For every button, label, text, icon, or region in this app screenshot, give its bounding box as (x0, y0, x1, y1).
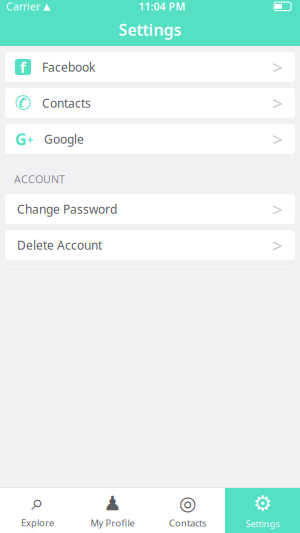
button[interactable]: ✆ (5, 88, 295, 118)
staticText: > (272, 91, 283, 115)
staticText: 11:04 PM (138, 0, 185, 13)
staticText: > (272, 233, 283, 258)
staticText: Delete Account (17, 237, 102, 253)
staticText: ⌕ (31, 492, 44, 514)
button[interactable]: ⚙ (225, 488, 300, 533)
staticText: Carrier (6, 0, 40, 13)
button[interactable]: Delete Account (5, 230, 295, 260)
button[interactable]: ♟ (75, 488, 150, 533)
button[interactable]: ◎ (150, 488, 225, 533)
staticText: > (272, 55, 283, 79)
staticText: > (272, 197, 283, 222)
staticText: Explore (21, 516, 54, 529)
staticText: Change Password (17, 201, 117, 217)
staticText: ACCOUNT (14, 172, 65, 186)
staticText: Facebook (42, 59, 95, 75)
button[interactable]: G (5, 124, 295, 154)
staticText: + (27, 132, 33, 146)
staticText: Settings (118, 19, 181, 40)
staticText: ⚙ (253, 491, 272, 515)
staticText: Contacts (42, 95, 91, 111)
staticText: My Profile (90, 517, 134, 529)
staticText: Google (44, 131, 84, 147)
button[interactable]: f (5, 52, 295, 82)
staticText: ♟ (103, 492, 121, 515)
staticText: ✆ (14, 92, 31, 114)
staticText: G (15, 128, 27, 150)
button[interactable]: Change Password (5, 194, 295, 224)
button[interactable]: ⌕ (0, 488, 75, 533)
staticText: f (20, 57, 26, 77)
staticText: Contacts (169, 517, 206, 529)
staticText: Settings (245, 517, 279, 530)
staticText: > (272, 127, 283, 151)
staticText: ◎ (179, 492, 196, 515)
staticText: ▲ (43, 1, 50, 12)
